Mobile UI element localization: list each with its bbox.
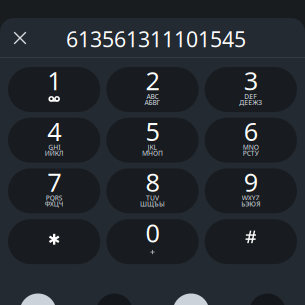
button[interactable]: 7 bbox=[8, 168, 100, 213]
staticText: GHI bbox=[48, 143, 60, 152]
button[interactable]: Close bbox=[2, 19, 38, 57]
staticText: 7 bbox=[47, 165, 61, 199]
staticText: АБВГ bbox=[144, 98, 160, 107]
staticText: ДЕЁЖЗ bbox=[239, 98, 262, 107]
button[interactable]: 4 bbox=[8, 118, 100, 163]
staticText: ФХЦЧ bbox=[45, 199, 64, 208]
staticText: 1 bbox=[47, 64, 61, 97]
button[interactable]: 2 bbox=[106, 67, 199, 112]
staticText: МНОП bbox=[142, 149, 163, 158]
staticText: 4 bbox=[47, 114, 61, 148]
staticText: PQRS bbox=[46, 193, 63, 202]
staticText: 0 bbox=[145, 216, 159, 249]
button[interactable]: 8 bbox=[106, 168, 199, 213]
button[interactable]: 9 bbox=[205, 168, 297, 213]
staticText: 5 bbox=[145, 114, 159, 148]
button[interactable] bbox=[8, 219, 100, 264]
staticText: РСТУ bbox=[243, 149, 259, 158]
button[interactable]: Call bbox=[173, 293, 209, 305]
button[interactable]: 5 bbox=[106, 118, 199, 163]
staticText: TUV bbox=[146, 193, 159, 202]
staticText: 6 bbox=[244, 114, 258, 148]
staticText: ABC bbox=[146, 92, 158, 101]
button[interactable]: 0 bbox=[106, 219, 199, 264]
staticText: 3 bbox=[244, 64, 258, 97]
staticText: JKL bbox=[147, 143, 157, 152]
staticText: 8 bbox=[145, 165, 159, 199]
staticText: ШЩЪЫ bbox=[140, 199, 165, 208]
button[interactable]: 6 bbox=[205, 118, 297, 163]
button[interactable]: 1 bbox=[8, 67, 100, 112]
staticText: DEF bbox=[244, 92, 257, 101]
button[interactable]: 3 bbox=[205, 67, 297, 112]
button[interactable]: Delete bbox=[249, 293, 286, 305]
staticText: 9 bbox=[244, 165, 258, 199]
staticText: ЬЭЮЯ bbox=[241, 199, 260, 208]
button[interactable] bbox=[205, 219, 297, 264]
staticText: MNO bbox=[243, 143, 259, 152]
staticText: ИЙКЛ bbox=[45, 149, 64, 158]
staticText: WXYZ bbox=[242, 193, 260, 202]
staticText: 613561311101545 bbox=[66, 25, 246, 53]
button[interactable]: Delete bbox=[96, 293, 133, 305]
staticText: 2 bbox=[145, 64, 159, 97]
button[interactable]: Call bbox=[20, 293, 56, 305]
